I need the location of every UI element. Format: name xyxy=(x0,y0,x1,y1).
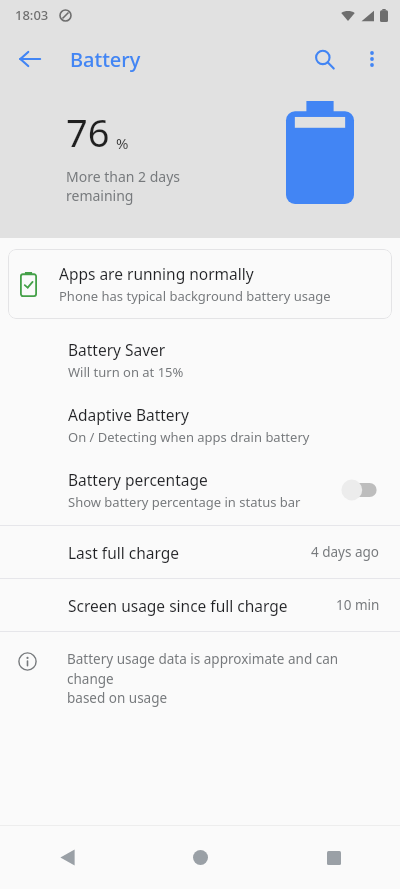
other: Battery percentage toggle xyxy=(338,477,384,503)
staticText: Screen usage since full charge xyxy=(68,595,336,616)
staticText: Battery percentage xyxy=(68,469,208,490)
staticText: Will turn on at 15% xyxy=(68,363,184,381)
button[interactable]: Battery percentage xyxy=(0,469,400,511)
button[interactable]: Apps are running normally xyxy=(8,249,392,319)
button[interactable]: Recent apps xyxy=(267,826,400,889)
staticText: Last full charge xyxy=(68,542,311,563)
staticText: More than 2 days remaining xyxy=(66,167,181,205)
staticText: Adaptive Battery xyxy=(68,404,189,425)
staticText: 10 min xyxy=(336,596,380,614)
staticText: Battery Saver xyxy=(68,339,166,360)
staticText: 18:03 xyxy=(15,6,49,24)
button[interactable]: Adaptive Battery xyxy=(0,404,400,446)
staticText: 76 xyxy=(66,106,110,158)
staticText: Show battery percentage in status bar xyxy=(68,493,301,511)
button[interactable]: Last full charge xyxy=(0,526,400,578)
button[interactable]: Back xyxy=(6,35,54,83)
staticText: % xyxy=(116,133,129,153)
button[interactable]: Home xyxy=(134,826,267,889)
staticText: On / Detecting when apps drain battery xyxy=(68,428,310,446)
button[interactable]: Search xyxy=(300,35,348,83)
button[interactable]: Back xyxy=(0,826,134,889)
staticText: Apps are running normally xyxy=(59,263,254,284)
staticText: 4 days ago xyxy=(311,543,380,561)
button[interactable]: More options xyxy=(348,35,396,83)
staticText: Phone has typical background battery usa… xyxy=(59,287,331,305)
button[interactable]: Battery Saver xyxy=(0,339,400,381)
staticText: Battery usage data is approximate and ca… xyxy=(67,650,382,707)
button[interactable]: Screen usage since full charge xyxy=(0,579,400,631)
staticText: Battery xyxy=(70,46,141,73)
